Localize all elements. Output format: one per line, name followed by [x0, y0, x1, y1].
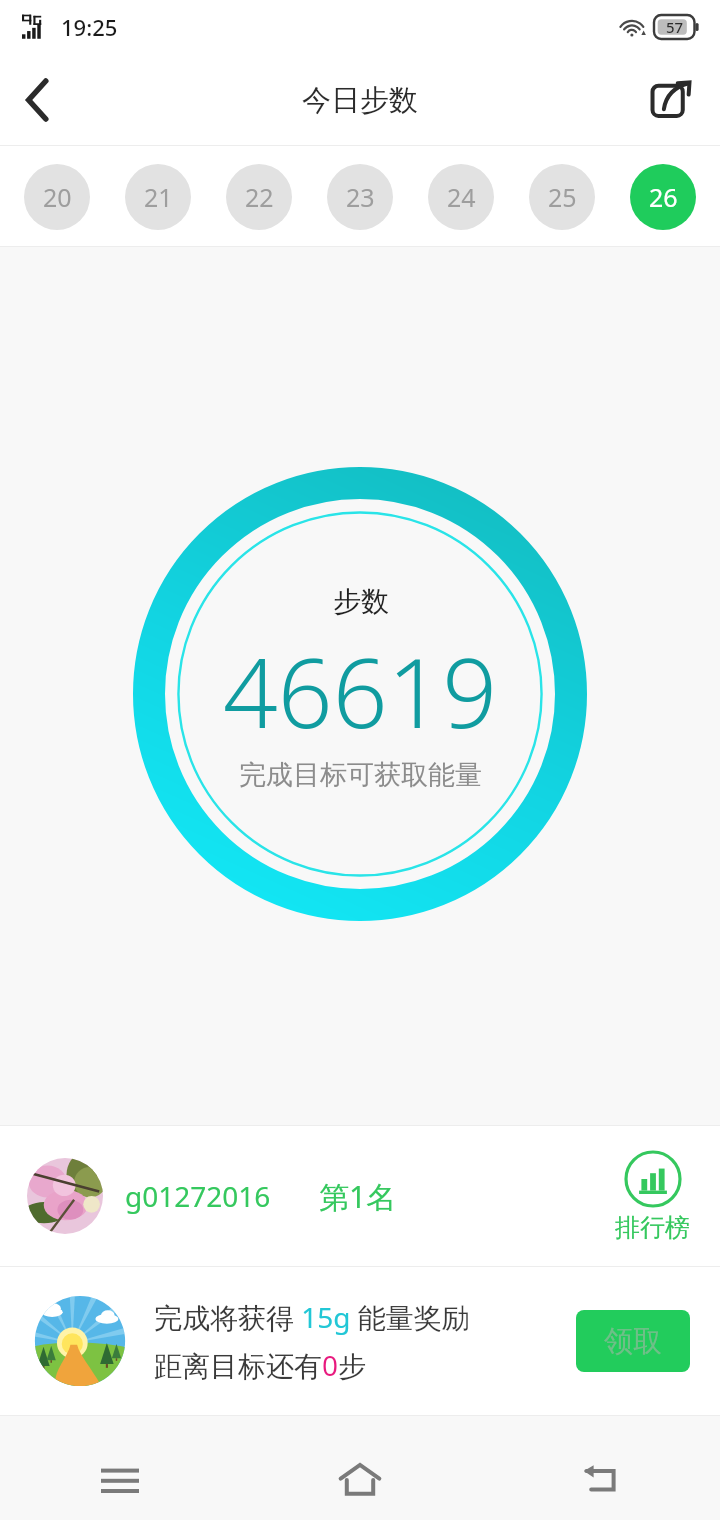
button[interactable]: 26 — [630, 164, 696, 230]
staticText: 22 — [245, 180, 274, 214]
staticText: 距离目标还有0步 — [154, 1346, 367, 1384]
staticText: 24 — [447, 180, 476, 214]
staticText: 今日步数 — [302, 82, 418, 119]
staticText: 第1名 — [319, 1176, 397, 1217]
button[interactable]: Home — [240, 1440, 480, 1520]
staticText: g01272016 — [125, 1177, 271, 1215]
staticText: 完成将获得 15g 能量奖励 — [154, 1298, 470, 1336]
staticText: 23 — [346, 180, 375, 214]
button[interactable]: Recent apps — [0, 1440, 240, 1520]
staticText: 21 — [144, 180, 173, 214]
staticText: 20 — [43, 180, 72, 214]
staticText: 19:25 — [61, 12, 118, 42]
staticText: 完成目标可获取能量 — [239, 758, 482, 792]
staticText: 46619 — [223, 625, 498, 756]
staticText: 57 — [666, 17, 684, 37]
button[interactable]: 22 — [226, 164, 292, 230]
button[interactable]: 排行榜 — [615, 1150, 690, 1243]
button[interactable]: 23 — [327, 164, 393, 230]
button[interactable]: Back — [0, 62, 76, 138]
button[interactable]: g01272016 — [0, 1126, 720, 1266]
staticText: 步数 — [333, 584, 389, 619]
staticText: 排行榜 — [615, 1212, 690, 1243]
button[interactable]: Share — [638, 67, 704, 133]
staticText: 领取 — [604, 1323, 662, 1360]
staticText: 25 — [548, 180, 577, 214]
button[interactable]: 25 — [529, 164, 595, 230]
button[interactable]: 21 — [125, 164, 191, 230]
button[interactable]: 20 — [24, 164, 90, 230]
button[interactable]: 24 — [428, 164, 494, 230]
button[interactable]: 领取 — [576, 1310, 690, 1372]
button[interactable]: Back — [480, 1440, 720, 1520]
staticText: 26 — [649, 180, 678, 214]
